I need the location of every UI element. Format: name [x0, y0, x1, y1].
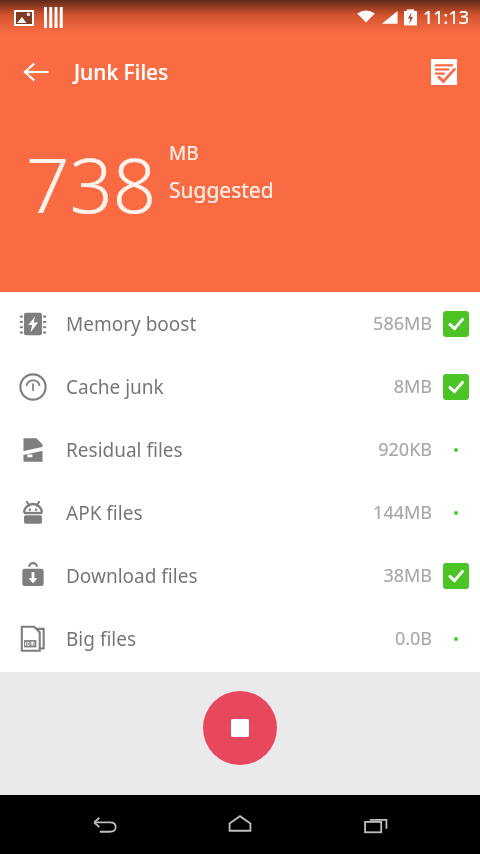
staticText: 38MB — [383, 563, 432, 588]
staticText: Big files — [66, 626, 137, 652]
staticText: Cache junk — [66, 374, 164, 400]
button[interactable]: Download files — [0, 544, 480, 607]
staticText: MB — [169, 140, 199, 166]
staticText: Junk Files — [74, 58, 169, 87]
staticText: Suggested — [169, 176, 274, 205]
button[interactable]: Scanning — [432, 607, 480, 670]
button[interactable]: Selected — [432, 292, 480, 355]
button[interactable]: Stop scanning — [203, 691, 277, 765]
staticText: 8MB — [393, 374, 432, 399]
staticText: 586MB — [373, 311, 432, 336]
button[interactable]: Select all — [420, 48, 468, 96]
staticText: 11:13 — [423, 5, 470, 30]
button[interactable]: Scanning — [432, 418, 480, 481]
staticText: Memory boost — [66, 311, 197, 337]
staticText: Residual files — [66, 437, 183, 463]
button[interactable]: Memory boost — [0, 292, 480, 355]
staticText: APK files — [66, 500, 143, 526]
button[interactable]: APK files — [0, 481, 480, 544]
button[interactable]: Selected — [432, 544, 480, 607]
button[interactable]: Selected — [432, 355, 480, 418]
staticText: 738 — [26, 132, 157, 236]
staticText: 0.0B — [394, 626, 432, 651]
staticText: 920KB — [378, 437, 432, 462]
button[interactable]: Back — [12, 48, 60, 96]
button[interactable]: Big files — [0, 607, 480, 670]
button[interactable]: Back — [72, 799, 136, 851]
button[interactable]: Cache junk — [0, 355, 480, 418]
button[interactable]: Residual files — [0, 418, 480, 481]
button[interactable]: Home — [208, 799, 272, 851]
staticText: Download files — [66, 563, 198, 589]
staticText: 144MB — [373, 500, 432, 525]
button[interactable]: Scanning — [432, 481, 480, 544]
button[interactable]: Recents — [344, 799, 408, 851]
